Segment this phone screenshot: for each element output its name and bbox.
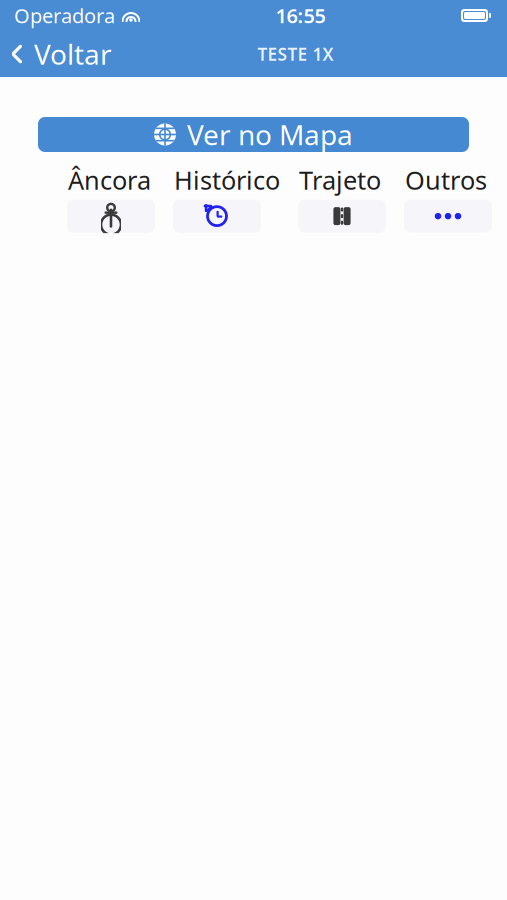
staticText: Ver no Mapa bbox=[187, 116, 353, 153]
staticText: Trajeto bbox=[299, 163, 381, 197]
staticText: Âncora bbox=[68, 163, 151, 197]
button[interactable]: Outros bbox=[404, 163, 492, 233]
staticText: Operadora bbox=[14, 2, 115, 29]
staticText: TESTE 1X bbox=[257, 42, 333, 65]
staticText: 16:55 bbox=[275, 2, 325, 29]
staticText: Outros bbox=[405, 163, 487, 197]
staticText: Histórico bbox=[174, 163, 280, 197]
staticText: Voltar bbox=[34, 35, 112, 73]
button[interactable]: Histórico bbox=[173, 163, 280, 233]
button[interactable]: Âncora bbox=[67, 163, 155, 233]
button[interactable]: Ver no Mapa bbox=[38, 117, 469, 152]
button[interactable]: Trajeto bbox=[298, 163, 386, 233]
button[interactable]: Voltar bbox=[0, 31, 124, 76]
